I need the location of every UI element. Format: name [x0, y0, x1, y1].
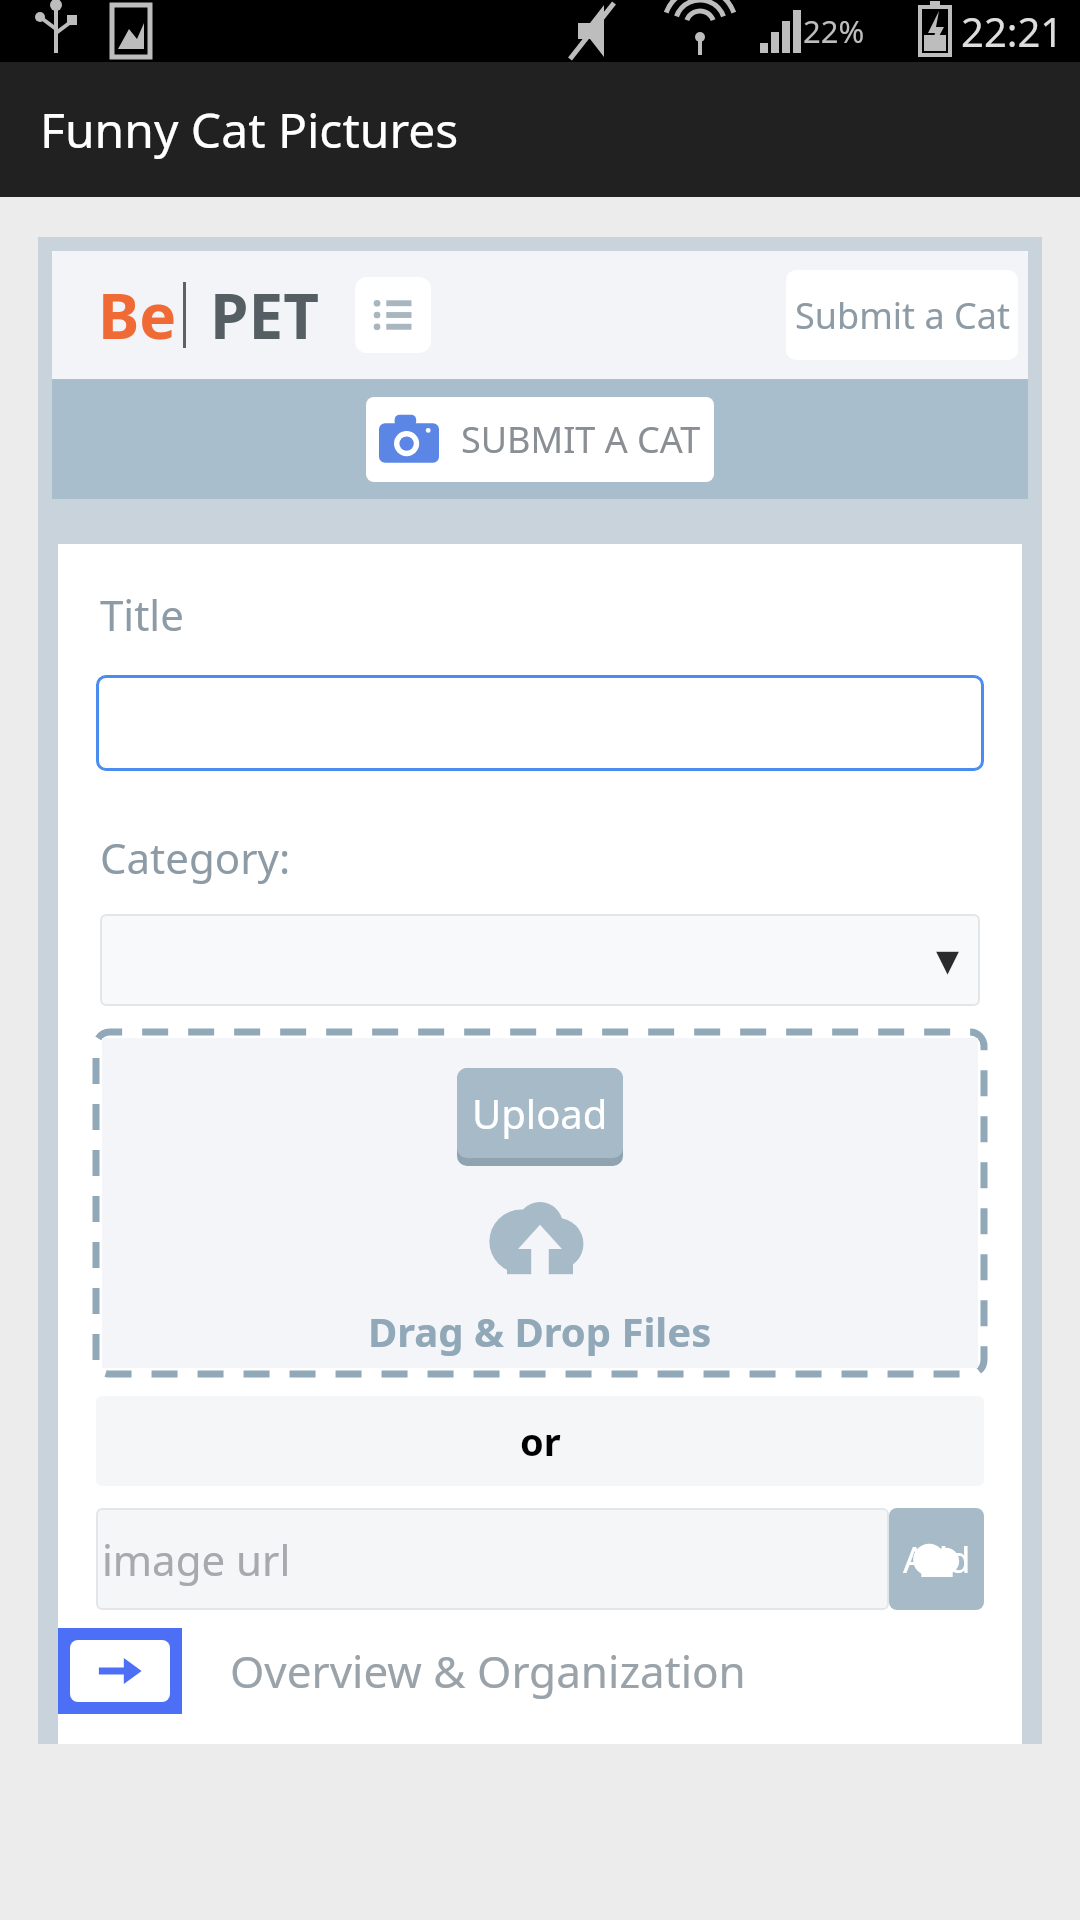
- staticText: Category:: [100, 829, 291, 886]
- staticText: 22:21: [961, 4, 1064, 58]
- staticText: Title: [100, 586, 184, 643]
- staticText: Overview & Organization: [230, 1641, 746, 1701]
- staticText: Be: [98, 273, 177, 357]
- button[interactable]: image url: [96, 1508, 889, 1610]
- staticText: or: [520, 1415, 561, 1467]
- button[interactable]: [96, 675, 984, 771]
- staticText: Submit a Cat: [795, 291, 1010, 340]
- button[interactable]: Submit a Cat: [786, 270, 1018, 360]
- staticText: 22%: [803, 10, 865, 52]
- staticText: Funny Cat Pictures: [40, 97, 459, 162]
- button[interactable]: Next: [58, 1628, 182, 1714]
- staticText: Upload: [472, 1086, 608, 1140]
- button[interactable]: Add: [889, 1508, 984, 1610]
- button[interactable]: Upload: [457, 1068, 623, 1166]
- button[interactable]: Menu: [355, 277, 431, 353]
- button[interactable]: SUBMIT A CAT: [366, 397, 714, 482]
- staticText: Drag & Drop Files: [368, 1304, 712, 1358]
- staticText: SUBMIT A CAT: [461, 415, 701, 464]
- staticText: Add: [903, 1535, 971, 1584]
- staticText: image url: [102, 1531, 291, 1588]
- button[interactable]: ▼: [100, 914, 980, 1006]
- staticText: ▼: [936, 943, 960, 978]
- staticText: PET: [210, 273, 319, 357]
